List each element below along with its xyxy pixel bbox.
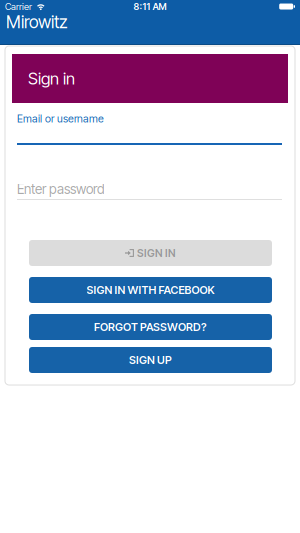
staticText: SIGN IN WITH FACEBOOK (86, 283, 214, 297)
button[interactable]: SIGN IN (29, 240, 272, 266)
button[interactable]: SIGN IN WITH FACEBOOK (29, 277, 272, 303)
staticText: 8:11 AM (133, 1, 166, 12)
staticText: Mirowitz (6, 11, 68, 32)
button[interactable]: FORGOT PASSWORD? (29, 314, 272, 340)
button[interactable]: SIGN UP (29, 347, 272, 373)
staticText: Carrier (5, 1, 32, 12)
staticText: Enter password (17, 181, 105, 197)
staticText: FORGOT PASSWORD? (94, 320, 207, 334)
staticText: SIGN UP (129, 353, 172, 367)
staticText: Sign in (28, 68, 75, 89)
staticText: Email or username (17, 112, 104, 125)
staticText: SIGN IN (137, 246, 176, 259)
